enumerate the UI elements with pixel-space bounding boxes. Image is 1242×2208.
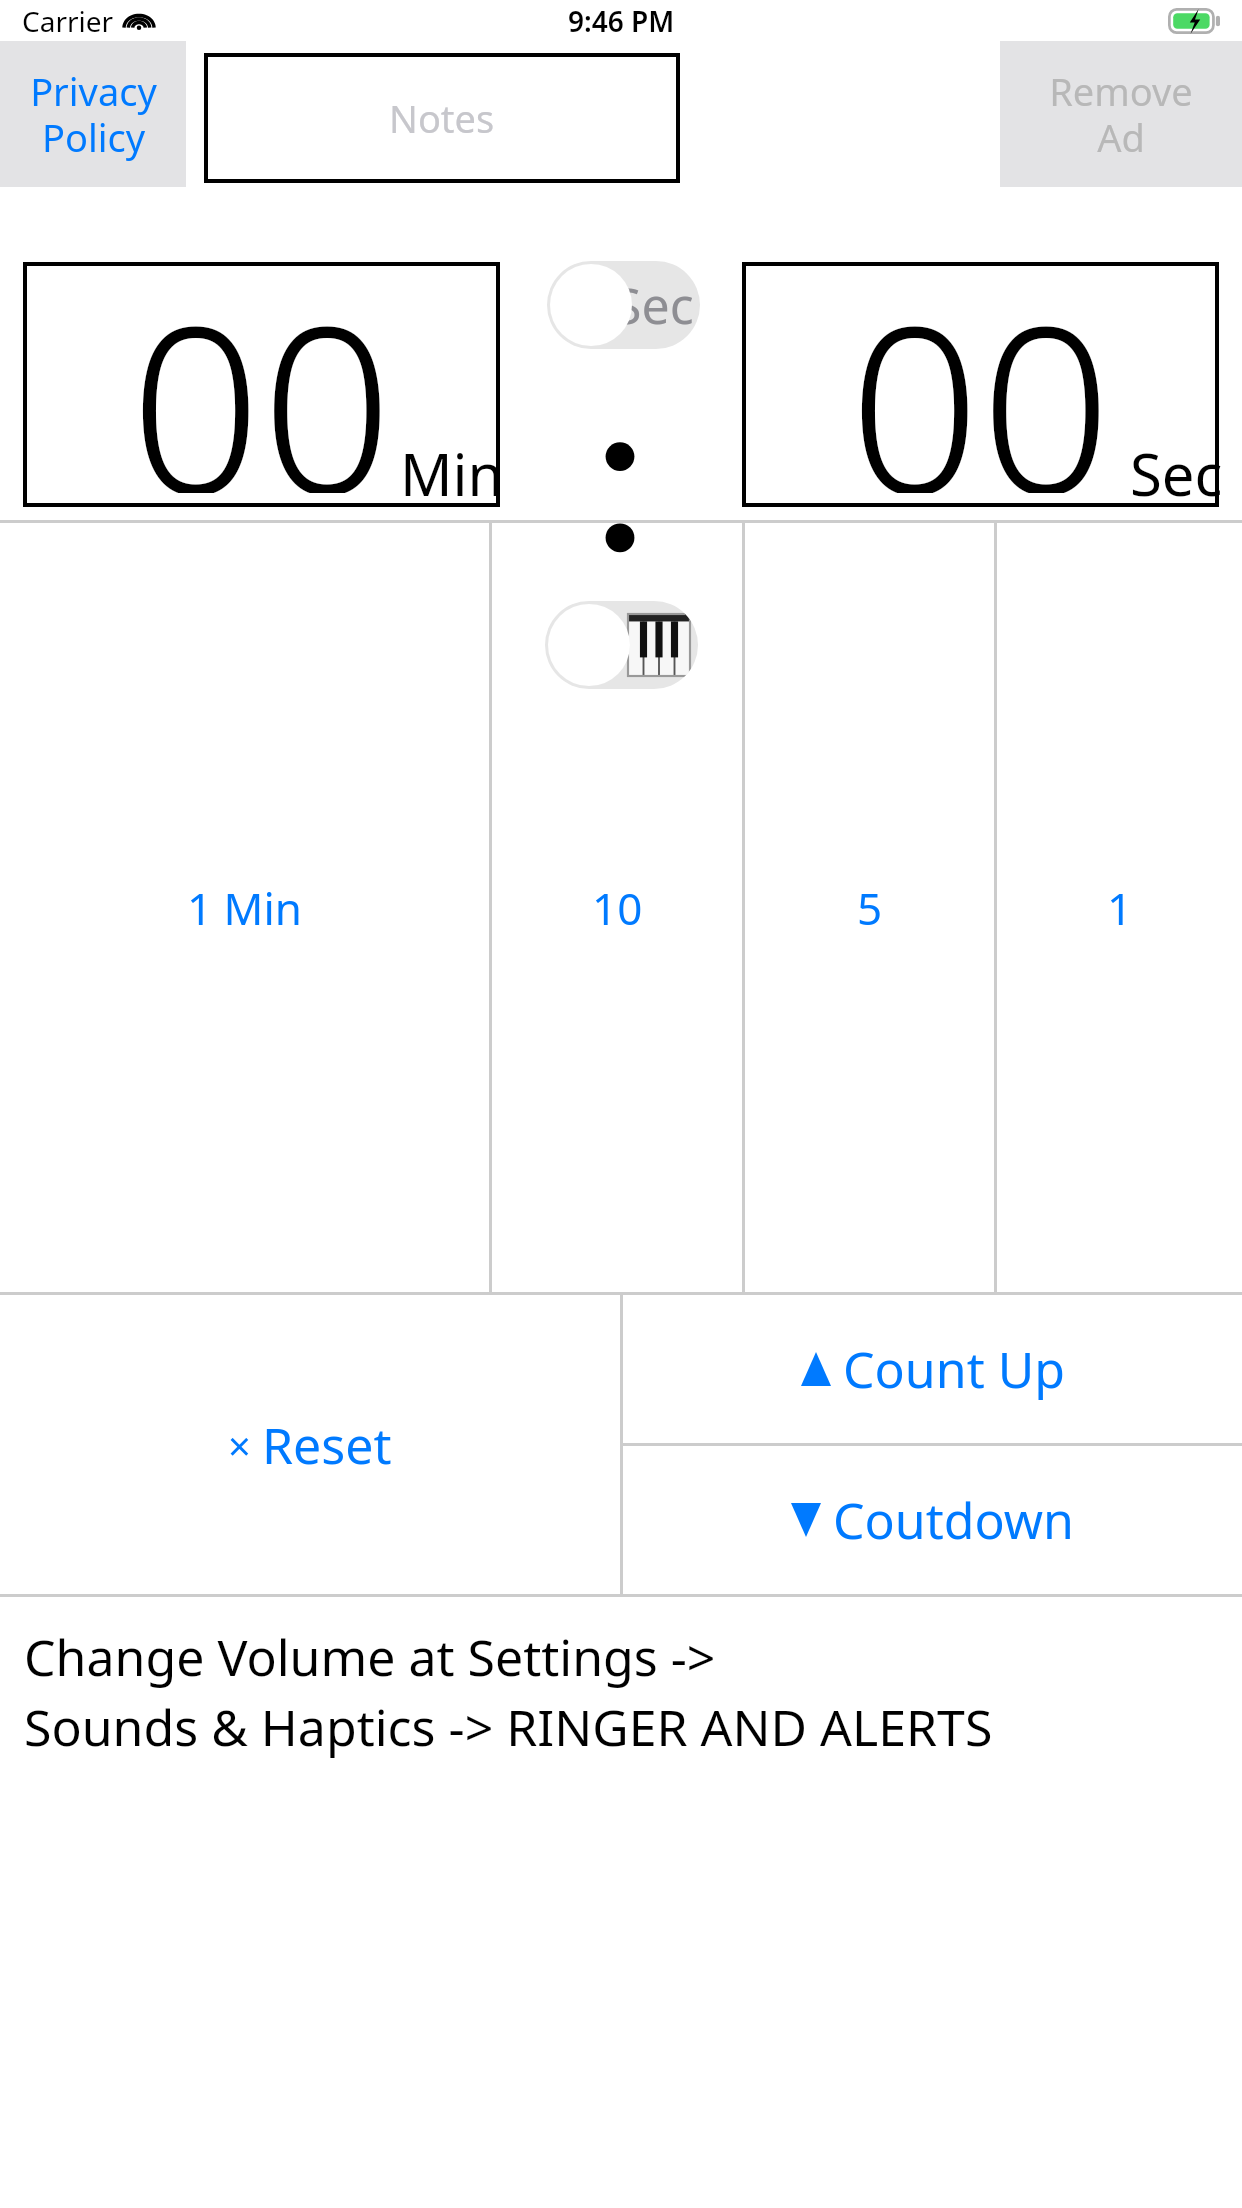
staticText: 9:46 PM — [568, 2, 675, 40]
staticText: Remove Ad — [1049, 65, 1193, 163]
staticText: 00 — [849, 248, 1112, 493]
staticText: 00 — [130, 248, 393, 493]
staticText: 10 — [592, 878, 643, 938]
button[interactable]: 1 Min — [0, 523, 489, 1292]
staticText: × — [228, 1418, 262, 1472]
button[interactable]: Count Up — [623, 1295, 1242, 1443]
staticText: Min — [400, 434, 504, 513]
button[interactable]: 5 — [745, 523, 994, 1292]
button[interactable]: 00 — [742, 262, 1219, 507]
staticText: Sounds & Haptics -> RINGER AND ALERTS — [24, 1693, 993, 1761]
button[interactable]: Notes — [204, 53, 680, 183]
button[interactable]: Seconds toggle — [547, 261, 700, 349]
staticText: Count Up — [843, 1335, 1065, 1403]
staticText: Change Volume at Settings -> — [24, 1623, 716, 1691]
staticText: Coutdown — [833, 1486, 1074, 1554]
button[interactable]: Sound toggle — [545, 601, 698, 689]
staticText: Sec — [1130, 434, 1223, 513]
button[interactable]: 1 — [997, 523, 1242, 1292]
staticText: 1 Min — [187, 878, 303, 938]
staticText: Notes — [389, 92, 495, 144]
button[interactable]: Privacy Policy — [0, 41, 186, 187]
staticText: Sec — [614, 271, 694, 339]
button[interactable]: Coutdown — [623, 1446, 1242, 1594]
staticText: 5 — [857, 878, 883, 938]
staticText: Privacy Policy — [30, 65, 157, 163]
button[interactable]: Remove Ad — [1000, 41, 1242, 187]
button[interactable]: × — [0, 1295, 620, 1594]
staticText: Carrier — [22, 2, 114, 40]
button[interactable]: 10 — [492, 523, 742, 1292]
staticText: 1 — [1107, 878, 1133, 938]
button[interactable]: 00 — [23, 262, 500, 507]
staticText: Reset — [262, 1411, 392, 1479]
